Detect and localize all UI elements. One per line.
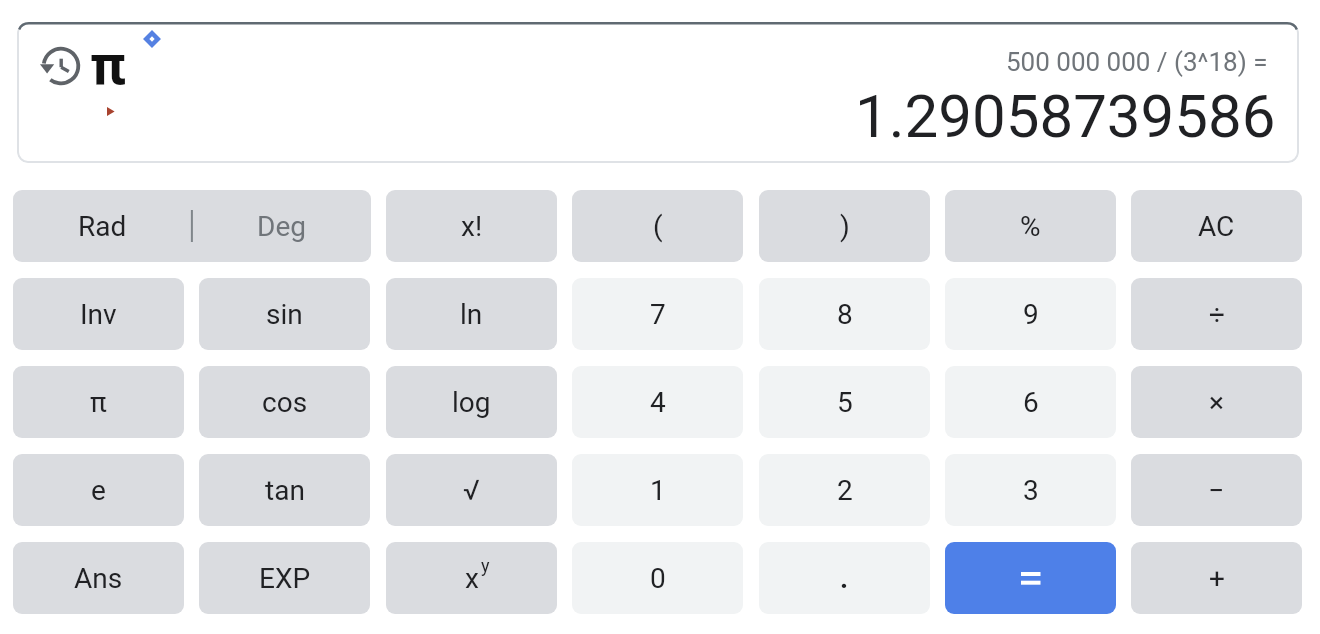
button[interactable] bbox=[38, 44, 84, 90]
staticText: 1 bbox=[650, 474, 666, 507]
button[interactable]: % bbox=[945, 190, 1116, 262]
staticText: x! bbox=[461, 210, 483, 243]
staticText: 7 bbox=[650, 298, 666, 331]
staticText: × bbox=[1209, 386, 1224, 419]
button[interactable]: . bbox=[759, 542, 930, 614]
staticText: 6 bbox=[1023, 386, 1039, 419]
staticText: √ bbox=[463, 474, 480, 507]
staticText: 2 bbox=[837, 474, 853, 507]
staticText: Ans bbox=[74, 562, 123, 595]
button[interactable]: + bbox=[1131, 542, 1302, 614]
button[interactable]: × bbox=[1131, 366, 1302, 438]
button[interactable]: 8 bbox=[759, 278, 930, 350]
staticText: % bbox=[1020, 210, 1041, 243]
staticText: 8 bbox=[837, 298, 853, 331]
staticText: 1.29058739586 bbox=[855, 81, 1276, 151]
button[interactable]: x bbox=[386, 542, 557, 614]
staticText: log bbox=[452, 386, 491, 419]
button[interactable]: √ bbox=[386, 454, 557, 526]
staticText: π bbox=[90, 386, 107, 419]
button[interactable]: 4 bbox=[572, 366, 743, 438]
staticText: sin bbox=[266, 298, 303, 331]
button[interactable]: x! bbox=[386, 190, 557, 262]
button[interactable]: 3 bbox=[945, 454, 1116, 526]
button[interactable]: Inv bbox=[13, 278, 184, 350]
button[interactable]: π bbox=[13, 366, 184, 438]
staticText: AC bbox=[1198, 210, 1235, 243]
staticText: 5 bbox=[837, 386, 853, 419]
button[interactable]: e bbox=[13, 454, 184, 526]
staticText: 9 bbox=[1023, 298, 1039, 331]
button[interactable]: ln bbox=[386, 278, 557, 350]
button[interactable]: Rad bbox=[13, 190, 371, 262]
staticText: e bbox=[91, 474, 106, 507]
button[interactable]: 9 bbox=[945, 278, 1116, 350]
button[interactable]: sin bbox=[199, 278, 370, 350]
button[interactable]: Ans bbox=[13, 542, 184, 614]
staticText: 3 bbox=[1023, 474, 1039, 507]
staticText: 500 000 000 / (3^18) = bbox=[1006, 47, 1268, 77]
staticText: Rad bbox=[78, 210, 127, 243]
staticText: 0 bbox=[650, 562, 666, 595]
staticText: ÷ bbox=[1209, 298, 1225, 331]
button[interactable] bbox=[945, 542, 1116, 614]
staticText: + bbox=[1209, 562, 1225, 595]
button[interactable]: AC bbox=[1131, 190, 1302, 262]
button[interactable]: 7 bbox=[572, 278, 743, 350]
staticText: ( bbox=[653, 210, 663, 243]
staticText: . bbox=[840, 562, 849, 595]
staticText: EXP bbox=[259, 562, 311, 595]
button[interactable]: − bbox=[1131, 454, 1302, 526]
staticText: π bbox=[90, 32, 127, 98]
button[interactable]: EXP bbox=[199, 542, 370, 614]
button[interactable]: cos bbox=[199, 366, 370, 438]
staticText: cos bbox=[262, 386, 308, 419]
button[interactable]: tan bbox=[199, 454, 370, 526]
staticText: Inv bbox=[80, 298, 117, 331]
button[interactable]: ( bbox=[572, 190, 743, 262]
button[interactable]: 1 bbox=[572, 454, 743, 526]
staticText: ln bbox=[460, 298, 483, 331]
button[interactable]: log bbox=[386, 366, 557, 438]
staticText: − bbox=[1208, 474, 1225, 507]
button[interactable]: 2 bbox=[759, 454, 930, 526]
staticText: y bbox=[481, 555, 490, 576]
staticText: 4 bbox=[650, 386, 666, 419]
staticText: ) bbox=[840, 210, 850, 243]
button[interactable]: 6 bbox=[945, 366, 1116, 438]
button[interactable]: ÷ bbox=[1131, 278, 1302, 350]
button[interactable]: 0 bbox=[572, 542, 743, 614]
staticText: Deg bbox=[257, 210, 306, 243]
staticText: x bbox=[465, 562, 479, 595]
button[interactable]: 5 bbox=[759, 366, 930, 438]
staticText: tan bbox=[265, 474, 305, 507]
button[interactable]: ) bbox=[759, 190, 930, 262]
